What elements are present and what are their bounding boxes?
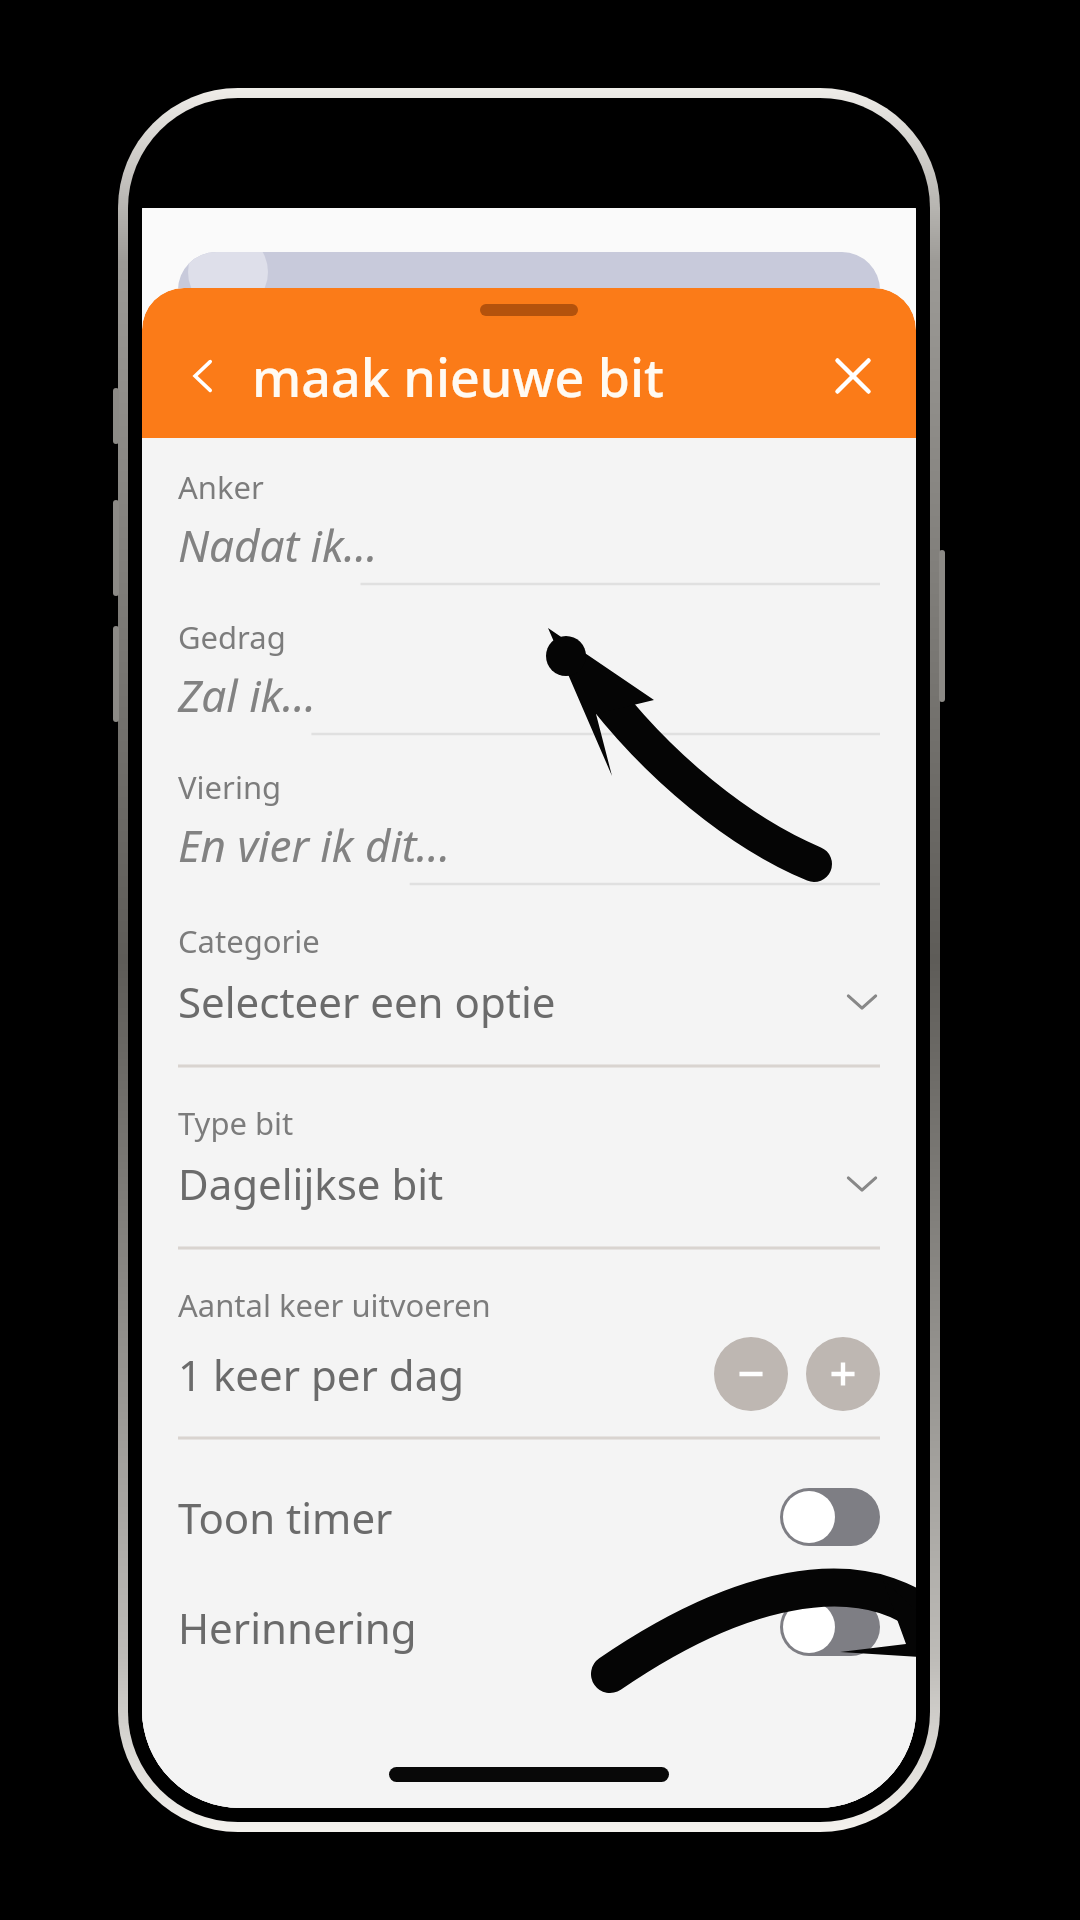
staticText: Categorie xyxy=(178,920,320,962)
staticText: Anker xyxy=(178,466,264,508)
button[interactable]: Terug xyxy=(174,347,232,405)
button[interactable]: Type bit xyxy=(178,1102,880,1250)
button[interactable]: Meer xyxy=(806,1337,880,1411)
staticText: maak nieuwe bit xyxy=(252,341,664,412)
staticText: Zal ik... xyxy=(178,665,317,725)
button[interactable]: Minder xyxy=(714,1337,788,1411)
staticText: En vier ik dit... xyxy=(178,815,451,875)
button[interactable]: Herinnering xyxy=(178,1572,880,1682)
staticText: Gedrag xyxy=(178,616,286,658)
staticText: Dagelijkse bit xyxy=(178,1155,444,1212)
staticText: Herinnering xyxy=(178,1599,417,1656)
button[interactable]: Viering xyxy=(178,766,880,886)
button[interactable]: Anker xyxy=(178,466,880,586)
staticText: Nadat ik... xyxy=(178,515,378,575)
button[interactable]: Categorie xyxy=(178,920,880,1068)
button[interactable]: Toon timer xyxy=(178,1462,880,1572)
button[interactable]: Sluiten xyxy=(822,345,884,407)
staticText: 1 keer per dag xyxy=(178,1346,465,1403)
staticText: Viering xyxy=(178,766,282,808)
staticText: Aantal keer uitvoeren xyxy=(178,1284,491,1326)
staticText: Selecteer een optie xyxy=(178,973,556,1030)
button[interactable]: Gedrag xyxy=(178,616,880,736)
staticText: Type bit xyxy=(178,1102,294,1144)
staticText: Toon timer xyxy=(178,1489,393,1546)
